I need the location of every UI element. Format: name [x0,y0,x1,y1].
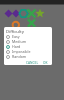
staticText: Impossible [12,49,31,54]
staticText: Easy [12,34,20,39]
staticText: OK [43,61,48,64]
button[interactable]: Medium [4,39,52,44]
staticText: Medium [12,39,27,44]
staticText: Hard [12,44,21,49]
staticText: Random [12,54,27,59]
button[interactable]: Hard [4,44,52,49]
button[interactable]: Impossible [4,49,52,54]
button[interactable]: OK [42,60,49,65]
staticText: CANCEL [26,61,39,64]
button[interactable]: CANCEL [25,60,40,65]
staticText: Difficulty [6,29,24,35]
button[interactable]: Random [4,54,52,59]
button[interactable]: Easy [4,34,52,39]
